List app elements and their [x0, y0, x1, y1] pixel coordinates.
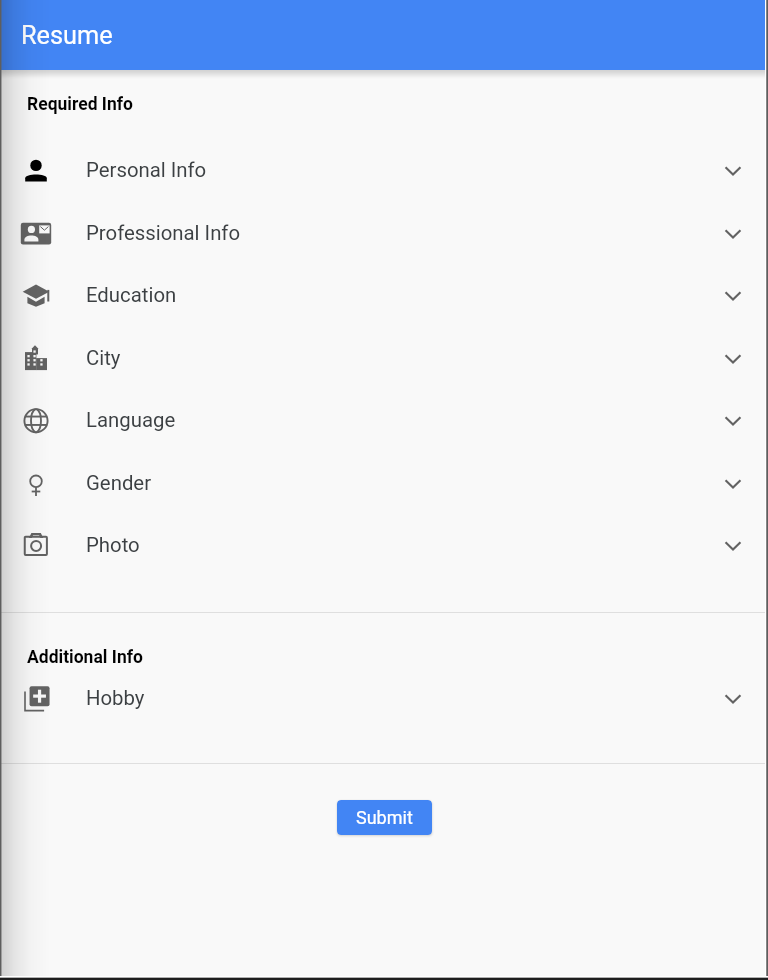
- other: Expand Language: [721, 408, 745, 432]
- button[interactable]: Personal Info: [0, 139, 768, 201]
- other: Expand City: [721, 346, 745, 370]
- other: Expand Professional Info: [721, 221, 745, 245]
- other: Expand Photo: [721, 533, 745, 557]
- button[interactable]: Language: [0, 389, 768, 451]
- staticText: Hobby: [86, 686, 145, 710]
- staticText: Education: [86, 283, 177, 307]
- staticText: Personal Info: [86, 158, 207, 182]
- button[interactable]: Gender: [0, 452, 768, 514]
- button[interactable]: City: [0, 327, 768, 389]
- button[interactable]: Photo: [0, 514, 768, 576]
- other: Expand Gender: [721, 471, 745, 495]
- other: Expand Personal Info: [721, 158, 745, 182]
- staticText: Submit: [356, 807, 413, 828]
- button[interactable]: Education: [0, 264, 768, 326]
- staticText: Additional Info: [27, 647, 143, 668]
- button[interactable]: Hobby: [0, 667, 768, 729]
- button[interactable]: Professional Info: [0, 202, 768, 264]
- staticText: Language: [86, 408, 176, 432]
- staticText: Professional Info: [86, 221, 241, 245]
- button[interactable]: Submit: [337, 800, 432, 835]
- staticText: Gender: [86, 471, 152, 495]
- other: Expand Hobby: [721, 686, 745, 710]
- staticText: Required Info: [27, 94, 133, 115]
- other: Expand Education: [721, 283, 745, 307]
- staticText: City: [86, 346, 121, 370]
- staticText: Photo: [86, 533, 140, 557]
- staticText: Resume: [21, 21, 113, 51]
